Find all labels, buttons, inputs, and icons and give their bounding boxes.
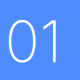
staticText: 01 [5, 7, 62, 76]
